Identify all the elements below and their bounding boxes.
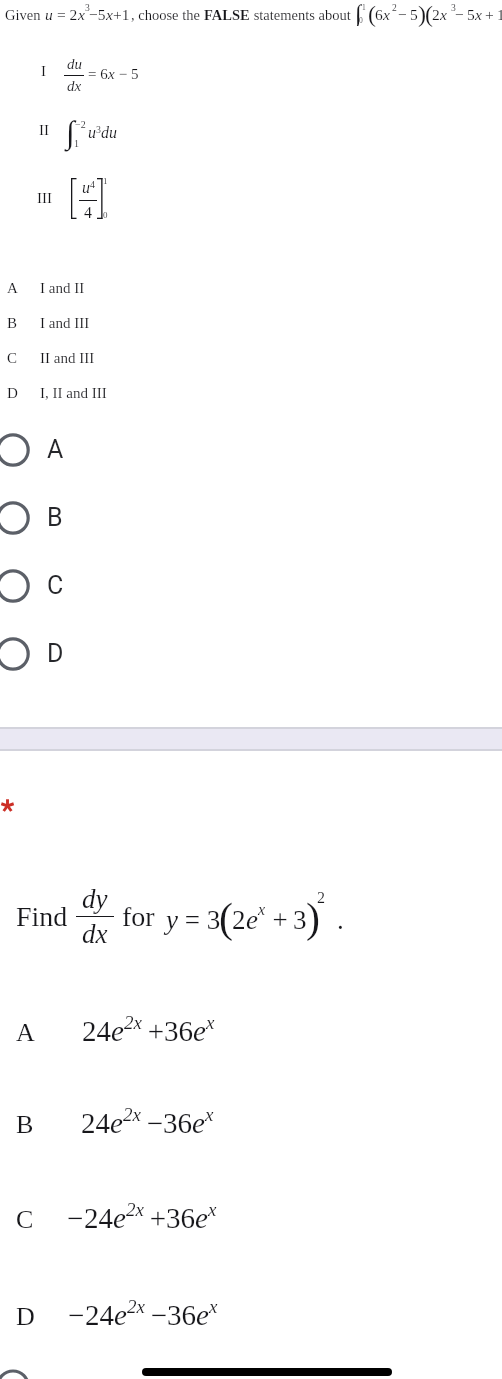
staticText: II and III xyxy=(40,350,95,367)
staticText: e xyxy=(246,905,258,935)
staticText: D xyxy=(47,639,64,668)
staticText: 1 xyxy=(362,3,366,11)
staticText: − 5 xyxy=(115,66,139,83)
button[interactable]: D xyxy=(0,635,502,673)
staticText: x xyxy=(258,901,266,919)
staticText: I and III xyxy=(40,315,90,332)
staticText: + 3 xyxy=(267,905,307,935)
staticText: 24 xyxy=(85,1299,114,1331)
staticText: 24 xyxy=(81,1107,110,1139)
staticText: A xyxy=(16,1018,35,1047)
staticText: 2 xyxy=(317,889,325,907)
staticText: 2x xyxy=(123,1104,141,1125)
staticText: x xyxy=(209,1296,218,1317)
staticText: 2x xyxy=(126,1199,144,1220)
staticText: − 5 xyxy=(395,6,418,23)
staticText: B xyxy=(7,315,18,332)
staticText: B xyxy=(47,503,63,532)
staticText: 2x xyxy=(124,1012,142,1033)
staticText: 36 xyxy=(163,1107,192,1139)
staticText: ( xyxy=(219,895,233,942)
staticText: , choose the xyxy=(131,7,204,23)
button[interactable]: D xyxy=(0,385,502,402)
staticText: statements about xyxy=(250,7,355,23)
staticText: D xyxy=(16,1302,35,1331)
staticText: C xyxy=(47,571,64,600)
staticText: 36 xyxy=(166,1202,195,1234)
staticText: + 1 xyxy=(482,6,502,23)
staticText: I xyxy=(41,63,46,80)
button[interactable]: B xyxy=(0,499,502,537)
staticText: 0 xyxy=(103,210,108,220)
staticText: e xyxy=(196,1299,209,1331)
staticText: ∫ xyxy=(66,114,75,149)
button[interactable]: C xyxy=(0,567,502,605)
staticText: − xyxy=(145,1299,168,1331)
staticText: x xyxy=(108,66,115,83)
staticText: C xyxy=(16,1205,34,1234)
staticText: u xyxy=(82,179,90,197)
staticText: 3 xyxy=(451,2,456,13)
staticText: − xyxy=(68,1299,85,1331)
button[interactable]: B xyxy=(0,1115,502,1147)
staticText: −2 xyxy=(75,119,86,130)
staticText: I and II xyxy=(40,280,85,297)
staticText: Find xyxy=(16,901,68,932)
staticText: C xyxy=(7,350,18,367)
staticText: 24 xyxy=(82,1015,111,1047)
staticText: e xyxy=(192,1107,205,1139)
staticText: for xyxy=(122,901,155,932)
staticText: 2 xyxy=(432,6,440,23)
staticText: e xyxy=(113,1202,126,1234)
staticText: −5 xyxy=(89,6,106,23)
staticText: x xyxy=(475,6,482,23)
staticText: x xyxy=(383,6,390,23)
button[interactable]: C xyxy=(0,350,502,367)
staticText: A xyxy=(47,435,64,464)
staticText: x xyxy=(206,1012,215,1033)
staticText: dy xyxy=(82,884,108,914)
staticText: ( xyxy=(368,1,376,28)
staticText: x xyxy=(205,1104,214,1125)
staticText: e xyxy=(114,1299,127,1331)
button[interactable]: A xyxy=(0,1023,502,1055)
staticText: ( xyxy=(425,1,433,28)
staticText: A xyxy=(7,280,18,297)
staticText: = 3 xyxy=(178,905,221,935)
staticText: du xyxy=(101,124,117,142)
staticText: II xyxy=(39,122,49,139)
staticText: dx xyxy=(82,919,108,949)
staticText: e xyxy=(195,1202,208,1234)
staticText: − xyxy=(141,1107,164,1139)
button[interactable]: C xyxy=(0,1210,502,1242)
staticText: x xyxy=(208,1199,217,1220)
staticText: 1 xyxy=(103,176,108,186)
staticText: +1 xyxy=(113,6,130,23)
staticText: − xyxy=(67,1202,84,1234)
staticText: x xyxy=(78,6,85,23)
staticText: FALSE xyxy=(204,7,250,23)
button[interactable]: B xyxy=(0,315,502,332)
staticText: D xyxy=(7,385,18,402)
staticText: B xyxy=(16,1110,34,1139)
staticText: + xyxy=(144,1202,167,1234)
staticText: du xyxy=(67,56,82,73)
staticText: e xyxy=(193,1015,206,1047)
staticText: 0 xyxy=(359,16,363,24)
staticText: 2 xyxy=(232,905,246,935)
staticText: x xyxy=(106,6,113,23)
staticText: y xyxy=(166,905,178,935)
staticText: ∫ xyxy=(355,0,362,26)
staticText: 3 xyxy=(85,2,90,13)
staticText: 24 xyxy=(84,1202,113,1234)
staticText: 4 xyxy=(84,204,92,222)
button[interactable]: A xyxy=(0,280,502,297)
button[interactable]: D xyxy=(0,1307,502,1339)
button[interactable]: A xyxy=(0,431,502,469)
staticText: ) xyxy=(418,1,426,28)
staticText: 3 xyxy=(96,124,101,135)
staticText: dx xyxy=(67,78,82,95)
staticText: e xyxy=(110,1107,123,1139)
staticText: I, II and III xyxy=(40,385,107,402)
staticText: x xyxy=(440,6,447,23)
